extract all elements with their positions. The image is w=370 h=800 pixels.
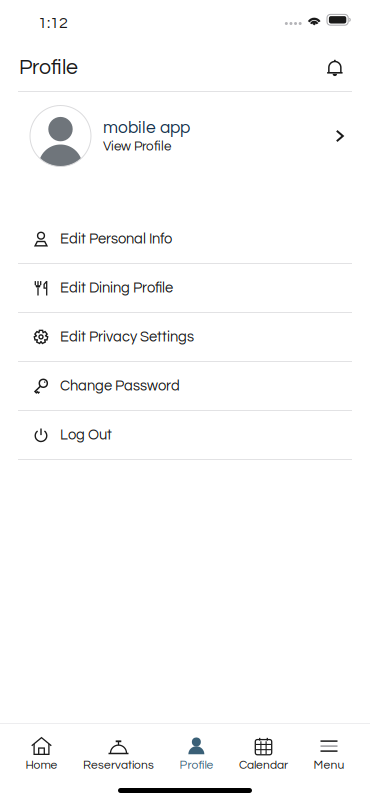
staticText: Reservations bbox=[83, 759, 154, 771]
staticText: Edit Privacy Settings bbox=[60, 329, 194, 344]
staticText: 1:12 bbox=[38, 15, 68, 31]
button[interactable]: mobile app bbox=[0, 92, 370, 180]
staticText: Profile bbox=[19, 56, 78, 78]
button[interactable]: Reservations bbox=[83, 724, 154, 778]
button[interactable]: Menu bbox=[313, 724, 344, 778]
button[interactable]: Notifications bbox=[320, 52, 350, 82]
staticText: Log Out bbox=[60, 427, 112, 442]
staticText: Menu bbox=[313, 759, 344, 771]
button[interactable]: Change Password bbox=[0, 362, 370, 410]
button[interactable]: Calendar bbox=[239, 724, 288, 778]
staticText: Edit Dining Profile bbox=[60, 280, 173, 295]
button[interactable]: Home bbox=[25, 724, 57, 778]
button[interactable]: Edit Dining Profile bbox=[0, 264, 370, 312]
staticText: mobile app bbox=[103, 119, 190, 137]
staticText: View Profile bbox=[103, 140, 171, 153]
button[interactable]: Edit Privacy Settings bbox=[0, 313, 370, 361]
staticText: Profile bbox=[179, 759, 213, 771]
staticText: Calendar bbox=[239, 759, 288, 771]
button[interactable]: Log Out bbox=[0, 411, 370, 459]
staticText: Edit Personal Info bbox=[60, 231, 172, 246]
staticText: Home bbox=[25, 759, 57, 771]
button[interactable]: Profile bbox=[179, 724, 213, 778]
staticText: Change Password bbox=[60, 378, 180, 393]
button[interactable]: Edit Personal Info bbox=[0, 215, 370, 263]
